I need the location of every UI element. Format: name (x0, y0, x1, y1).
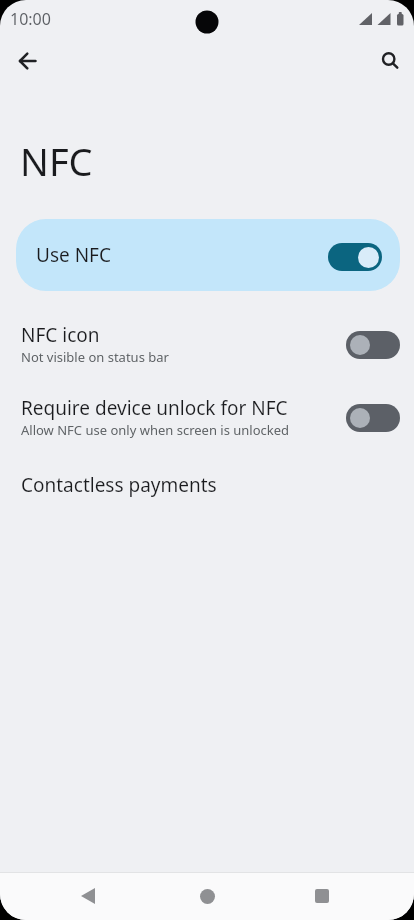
button[interactable]: Contactless payments (0, 461, 414, 509)
button[interactable] (6, 40, 48, 82)
staticText: NFC icon (21, 322, 100, 348)
button[interactable]: Require device unlock for NFC (0, 393, 414, 441)
button[interactable] (328, 243, 382, 271)
staticText: Require device unlock for NFC (21, 395, 288, 421)
staticText: Allow NFC use only when screen is unlock… (21, 421, 290, 439)
staticText: Not visible on status bar (21, 348, 169, 366)
button[interactable] (346, 331, 400, 359)
button[interactable] (183, 872, 231, 920)
button[interactable]: NFC icon (0, 320, 414, 368)
button[interactable] (346, 404, 400, 432)
button[interactable]: Use NFC (16, 219, 400, 291)
button[interactable] (64, 872, 112, 920)
staticText: 10:00 (10, 8, 51, 30)
staticText: Use NFC (36, 242, 111, 268)
button[interactable] (369, 40, 411, 82)
staticText: NFC (20, 135, 93, 187)
staticText: Contactless payments (21, 472, 217, 498)
button[interactable] (298, 872, 346, 920)
